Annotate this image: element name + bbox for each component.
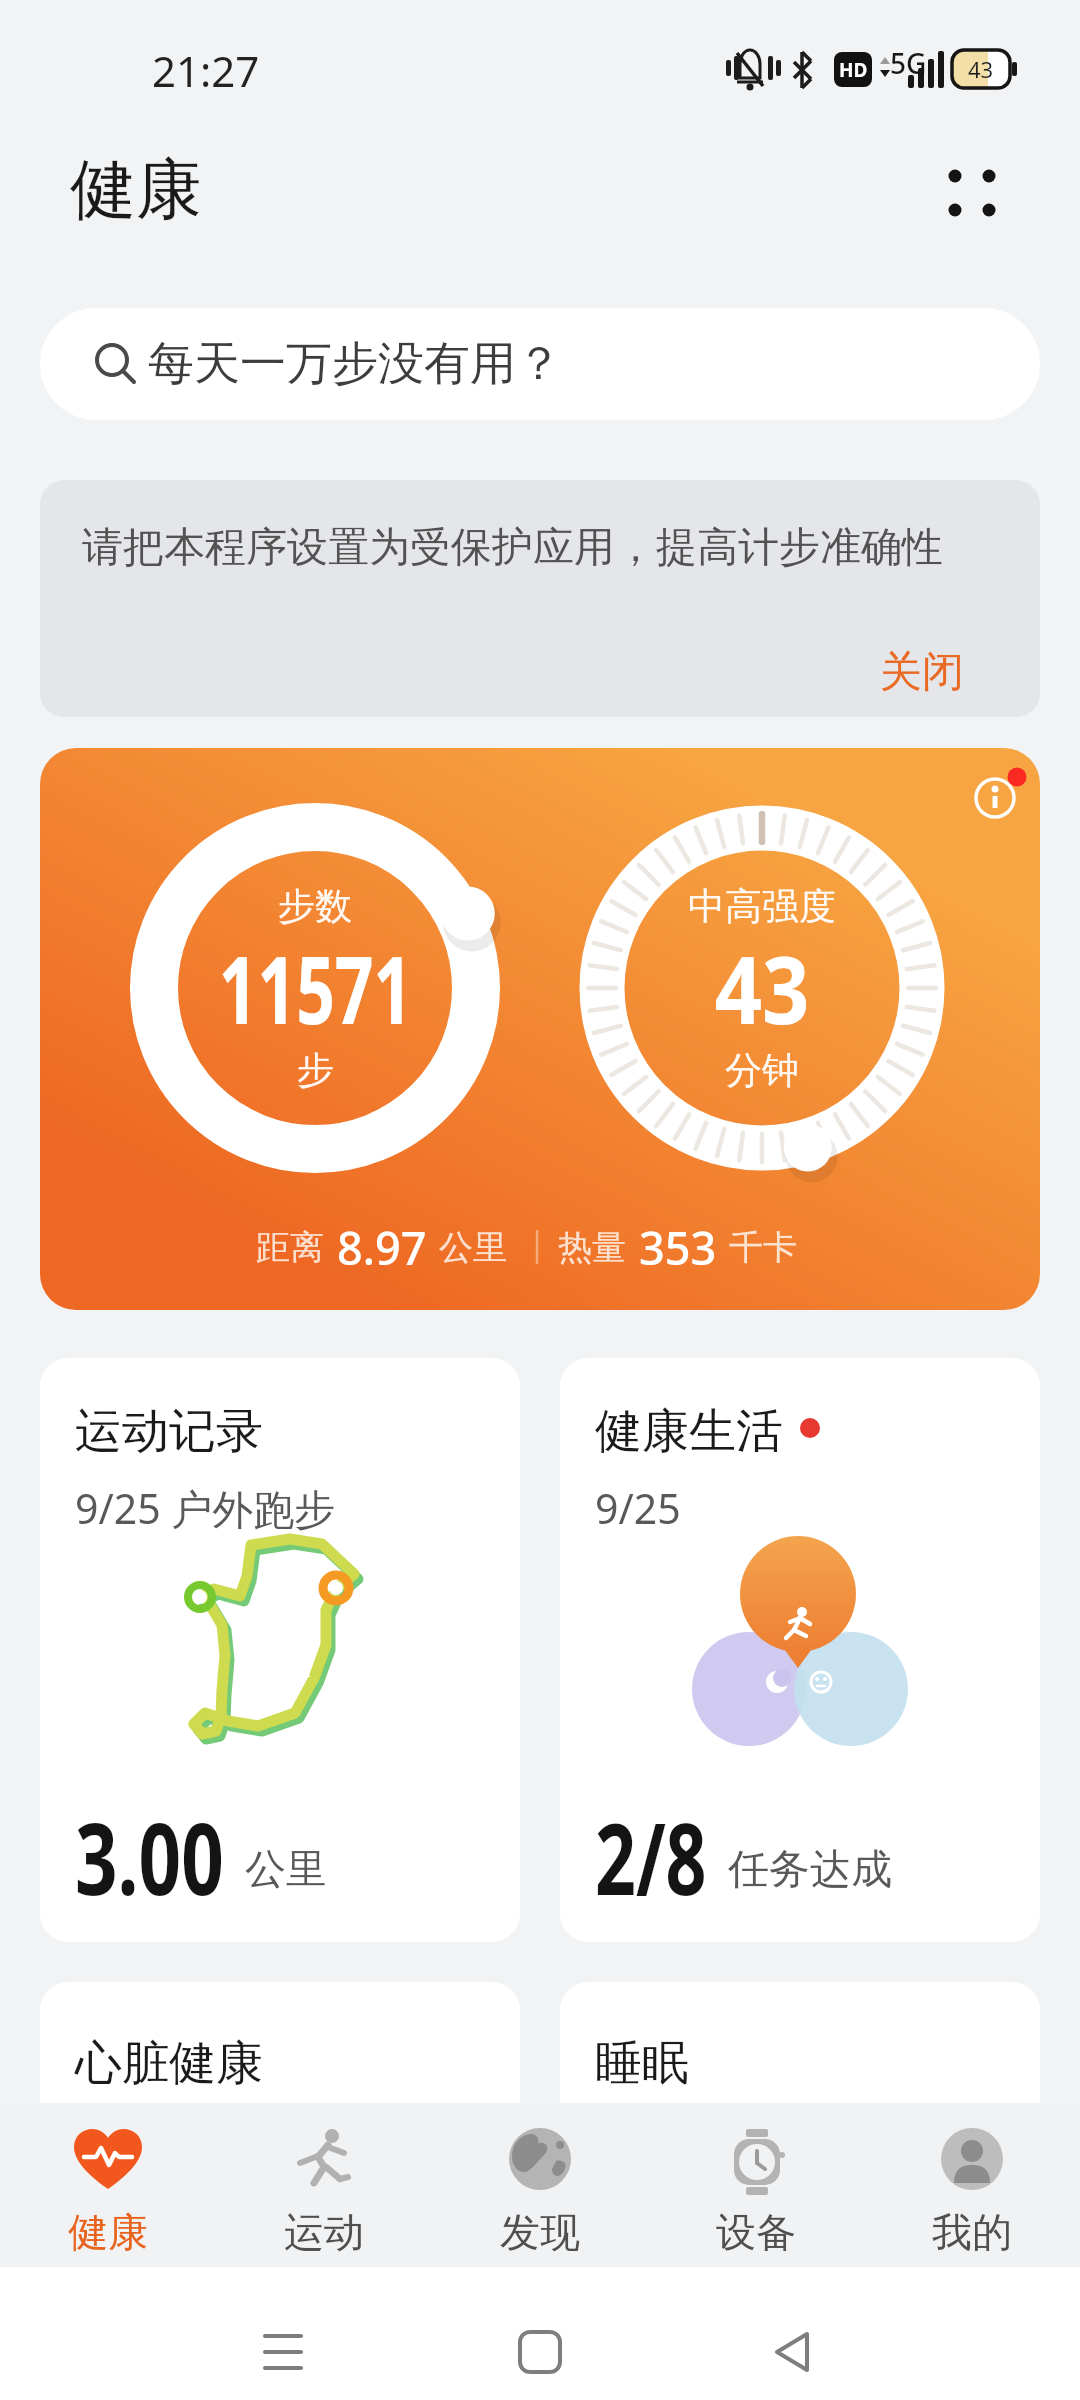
staticText: 3.00 bbox=[75, 1790, 224, 1923]
staticText: 11571 bbox=[219, 924, 412, 1052]
staticText: 关闭 bbox=[880, 646, 964, 699]
button[interactable]: 关闭 bbox=[852, 636, 992, 708]
button[interactable]: 健康生活 bbox=[560, 1358, 1040, 1942]
button[interactable] bbox=[490, 2302, 590, 2400]
button[interactable]: 心脏健康 bbox=[40, 1982, 520, 2103]
staticText: 心脏健康 bbox=[75, 2034, 263, 2093]
staticText: 21:27 bbox=[152, 42, 260, 99]
staticText: 每天一万步没有用？ bbox=[148, 335, 562, 393]
button[interactable] bbox=[745, 2302, 845, 2400]
button[interactable] bbox=[233, 2302, 333, 2400]
staticText: 请把本程序设置为受保护应用，提高计步准确性 bbox=[82, 522, 943, 574]
staticText: 8.97 bbox=[337, 1217, 427, 1278]
staticText: 健康 bbox=[68, 2207, 148, 2257]
staticText: 43 bbox=[714, 924, 809, 1052]
button[interactable]: 运动 bbox=[216, 2103, 432, 2267]
staticText: 健康 bbox=[70, 148, 202, 231]
button[interactable]: 请把本程序设置为受保护应用，提高计步准确性 bbox=[40, 480, 1040, 717]
button[interactable]: 运动记录 bbox=[40, 1358, 520, 1942]
staticText: 发现 bbox=[500, 2207, 580, 2257]
staticText: 热量 bbox=[558, 1226, 626, 1269]
staticText: 公里 bbox=[245, 1844, 327, 1896]
button[interactable]: 健康 bbox=[0, 2103, 216, 2267]
staticText: 353 bbox=[639, 1217, 717, 1278]
staticText: 健康生活 bbox=[595, 1402, 783, 1461]
staticText: 9/25 户外跑步 bbox=[75, 1480, 336, 1536]
staticText: 步 bbox=[297, 1047, 334, 1094]
staticText: 设备 bbox=[716, 2207, 796, 2257]
staticText: 分钟 bbox=[725, 1047, 799, 1094]
staticText: 运动记录 bbox=[75, 1402, 263, 1461]
button[interactable]: 设备 bbox=[648, 2103, 864, 2267]
staticText: 运动 bbox=[284, 2207, 364, 2257]
button[interactable]: 每天一万步没有用？ bbox=[40, 308, 1040, 420]
staticText: HD bbox=[839, 57, 868, 83]
button[interactable] bbox=[938, 158, 1008, 228]
staticText: 2/8 bbox=[595, 1790, 707, 1923]
staticText: 步数 bbox=[278, 883, 352, 930]
staticText: 9/25 bbox=[595, 1480, 681, 1536]
staticText: 中高强度 bbox=[688, 883, 836, 930]
button[interactable]: 睡眠 bbox=[560, 1982, 1040, 2103]
button[interactable]: 发现 bbox=[432, 2103, 648, 2267]
staticText: 睡眠 bbox=[595, 2034, 689, 2093]
staticText: 千卡 bbox=[729, 1226, 797, 1269]
staticText: 我的 bbox=[932, 2207, 1012, 2257]
staticText: 5G bbox=[890, 44, 927, 82]
button[interactable]: 步数 bbox=[40, 748, 1040, 1310]
staticText: 距离 bbox=[256, 1226, 324, 1269]
staticText: 公里 bbox=[439, 1226, 507, 1269]
button[interactable]: 我的 bbox=[864, 2103, 1080, 2267]
staticText: 任务达成 bbox=[728, 1844, 892, 1896]
staticText: 43 bbox=[968, 54, 994, 84]
